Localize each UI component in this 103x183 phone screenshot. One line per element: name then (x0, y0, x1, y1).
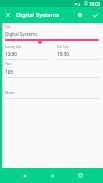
button[interactable]: Home (42, 168, 62, 183)
staticText: Digital Systems (5, 31, 38, 37)
button[interactable]: Choose colour (72, 7, 88, 23)
button[interactable]: Save (88, 7, 103, 23)
button[interactable]: Recent apps (70, 168, 90, 183)
staticText: 15:30 (57, 51, 69, 57)
staticText: 18:03 (89, 1, 101, 7)
staticText: 13:30 (5, 51, 17, 57)
button[interactable]: Close (0, 7, 15, 23)
staticText: Digital Systems (16, 11, 60, 19)
staticText: Note (5, 90, 15, 96)
button[interactable]: Back (14, 168, 34, 183)
staticText: Starting date (5, 45, 22, 49)
staticText: Place (5, 62, 12, 66)
staticText: End Time (57, 45, 69, 49)
staticText: Title (5, 25, 11, 29)
staticText: 103 (5, 69, 13, 75)
